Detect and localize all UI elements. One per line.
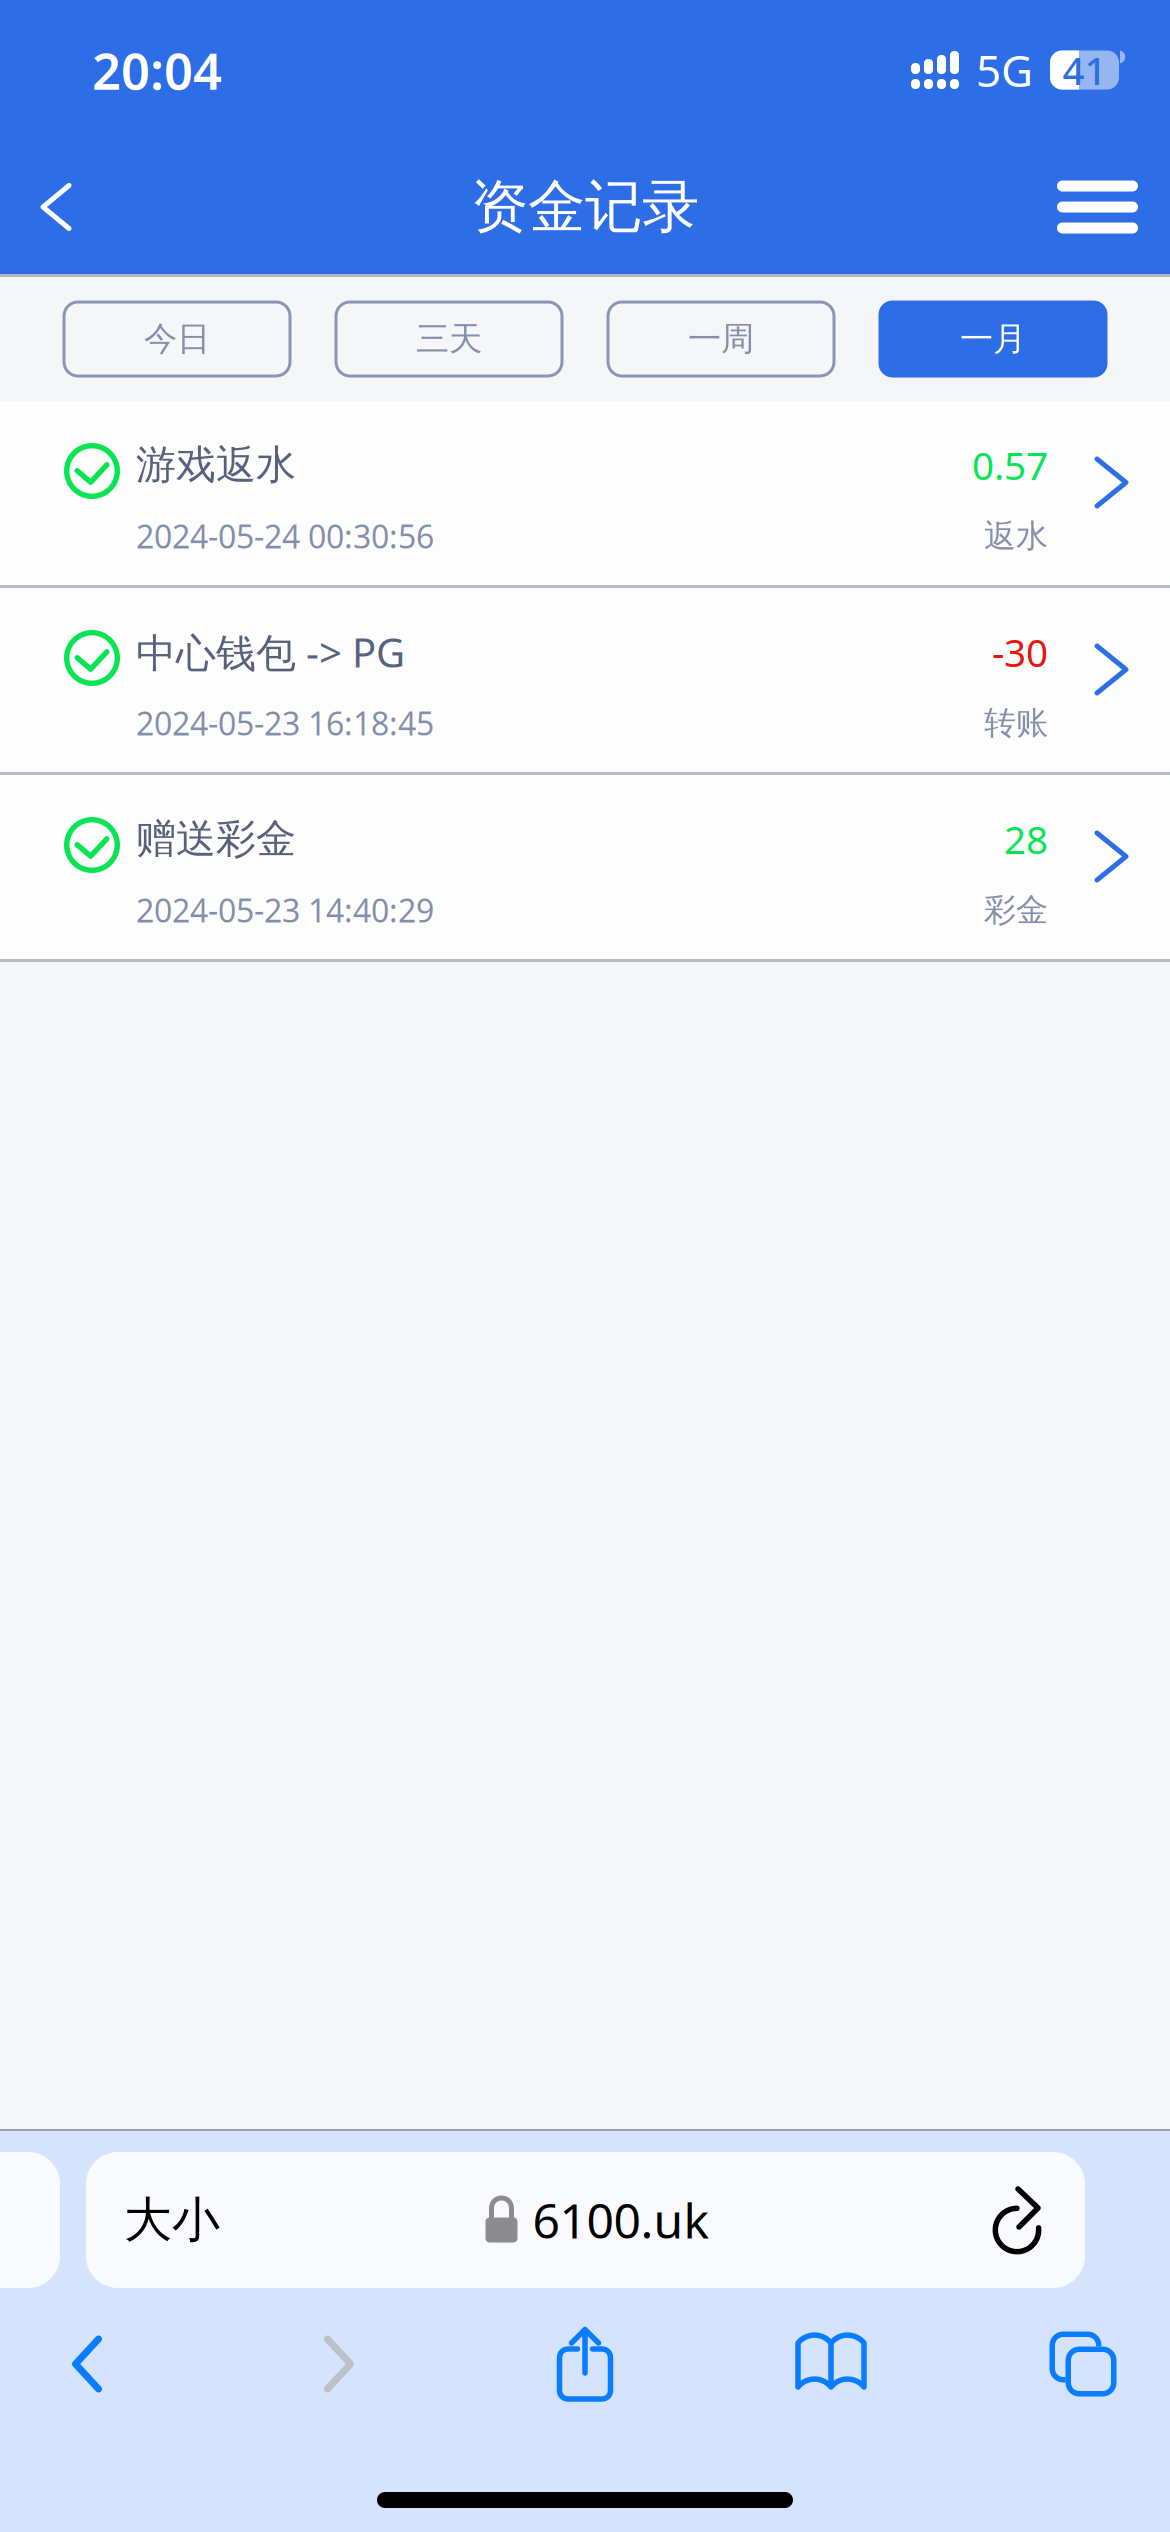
staticText: 2024-05-23 14:40:29 [136,889,434,931]
button[interactable]: Share [504,2312,666,2416]
staticText: 2024-05-23 16:18:45 [136,702,434,744]
staticText: 转账 [984,703,1048,743]
staticText: 一月 [960,318,1026,359]
staticText: 一周 [688,318,754,359]
button[interactable]: Forward [174,2312,504,2416]
staticText: 28 [1004,813,1048,865]
staticText: 中心钱包 -> PG [136,625,405,678]
button[interactable]: 赠送彩金 [0,775,1170,962]
button[interactable]: Tabs [996,2312,1170,2416]
button[interactable]: 一月 [878,300,1107,377]
staticText: 41 [1062,44,1106,96]
button[interactable]: 三天 [334,300,563,377]
staticText: 赠送彩金 [136,814,296,863]
button[interactable]: Bookmarks [666,2312,996,2416]
button[interactable]: Back [0,140,114,274]
button[interactable]: 今日 [62,300,291,377]
button[interactable]: 中心钱包 -> PG [0,588,1170,775]
staticText: 返水 [984,516,1048,556]
button[interactable]: Reload [975,2186,1085,2254]
staticText: 6100.uk [532,2188,709,2252]
button[interactable]: 一周 [606,300,835,377]
staticText: 资金记录 [471,172,699,242]
staticText: 彩金 [984,890,1048,930]
staticText: 游戏返水 [136,440,296,489]
staticText: 2024-05-24 00:30:56 [136,515,434,557]
button[interactable]: Menu [1017,140,1170,274]
button[interactable]: 大小 [86,2160,220,2279]
button[interactable]: Back [0,2312,174,2416]
staticText: 20:04 [92,36,222,104]
staticText: 大小 [124,2190,220,2249]
staticText: 0.57 [972,439,1048,491]
staticText: 今日 [144,318,210,359]
staticText: 三天 [416,318,482,359]
button[interactable]: 游戏返水 [0,401,1170,588]
staticText: -30 [992,626,1048,678]
staticText: 5G [976,41,1033,99]
